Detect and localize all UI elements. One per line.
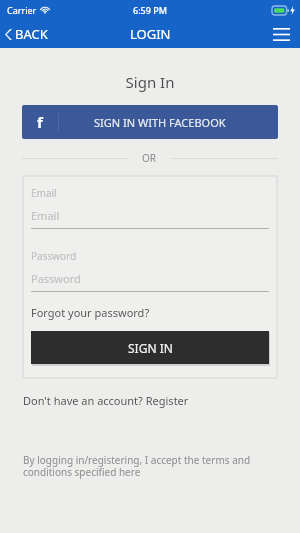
staticText: Password <box>31 249 77 263</box>
staticText: SIGN IN WITH FACEBOOK <box>94 115 226 130</box>
staticText: 6:59 PM <box>133 4 167 16</box>
staticText: OR <box>142 151 157 165</box>
button[interactable]: BACK <box>0 21 56 47</box>
staticText: Don't have an account? Register <box>23 393 189 408</box>
staticText: BACK <box>15 25 48 43</box>
button[interactable]: Forgot your password? <box>31 303 150 322</box>
button[interactable]: SIGN IN <box>31 331 269 364</box>
staticText: Sign In <box>0 72 300 92</box>
staticText: f <box>37 112 43 132</box>
button[interactable]: Menu <box>263 22 300 47</box>
staticText: Email <box>31 186 57 200</box>
staticText: LOGIN <box>130 25 171 43</box>
staticText: By logging in/registering, I accept the … <box>23 453 251 479</box>
staticText: Forgot your password? <box>31 305 150 320</box>
staticText: SIGN IN <box>128 340 173 356</box>
staticText: Carrier <box>7 4 37 16</box>
staticText: Password <box>31 271 81 286</box>
button[interactable]: Don't have an account? Register <box>23 390 189 411</box>
button[interactable]: f <box>22 105 278 139</box>
staticText: Email <box>31 208 60 223</box>
